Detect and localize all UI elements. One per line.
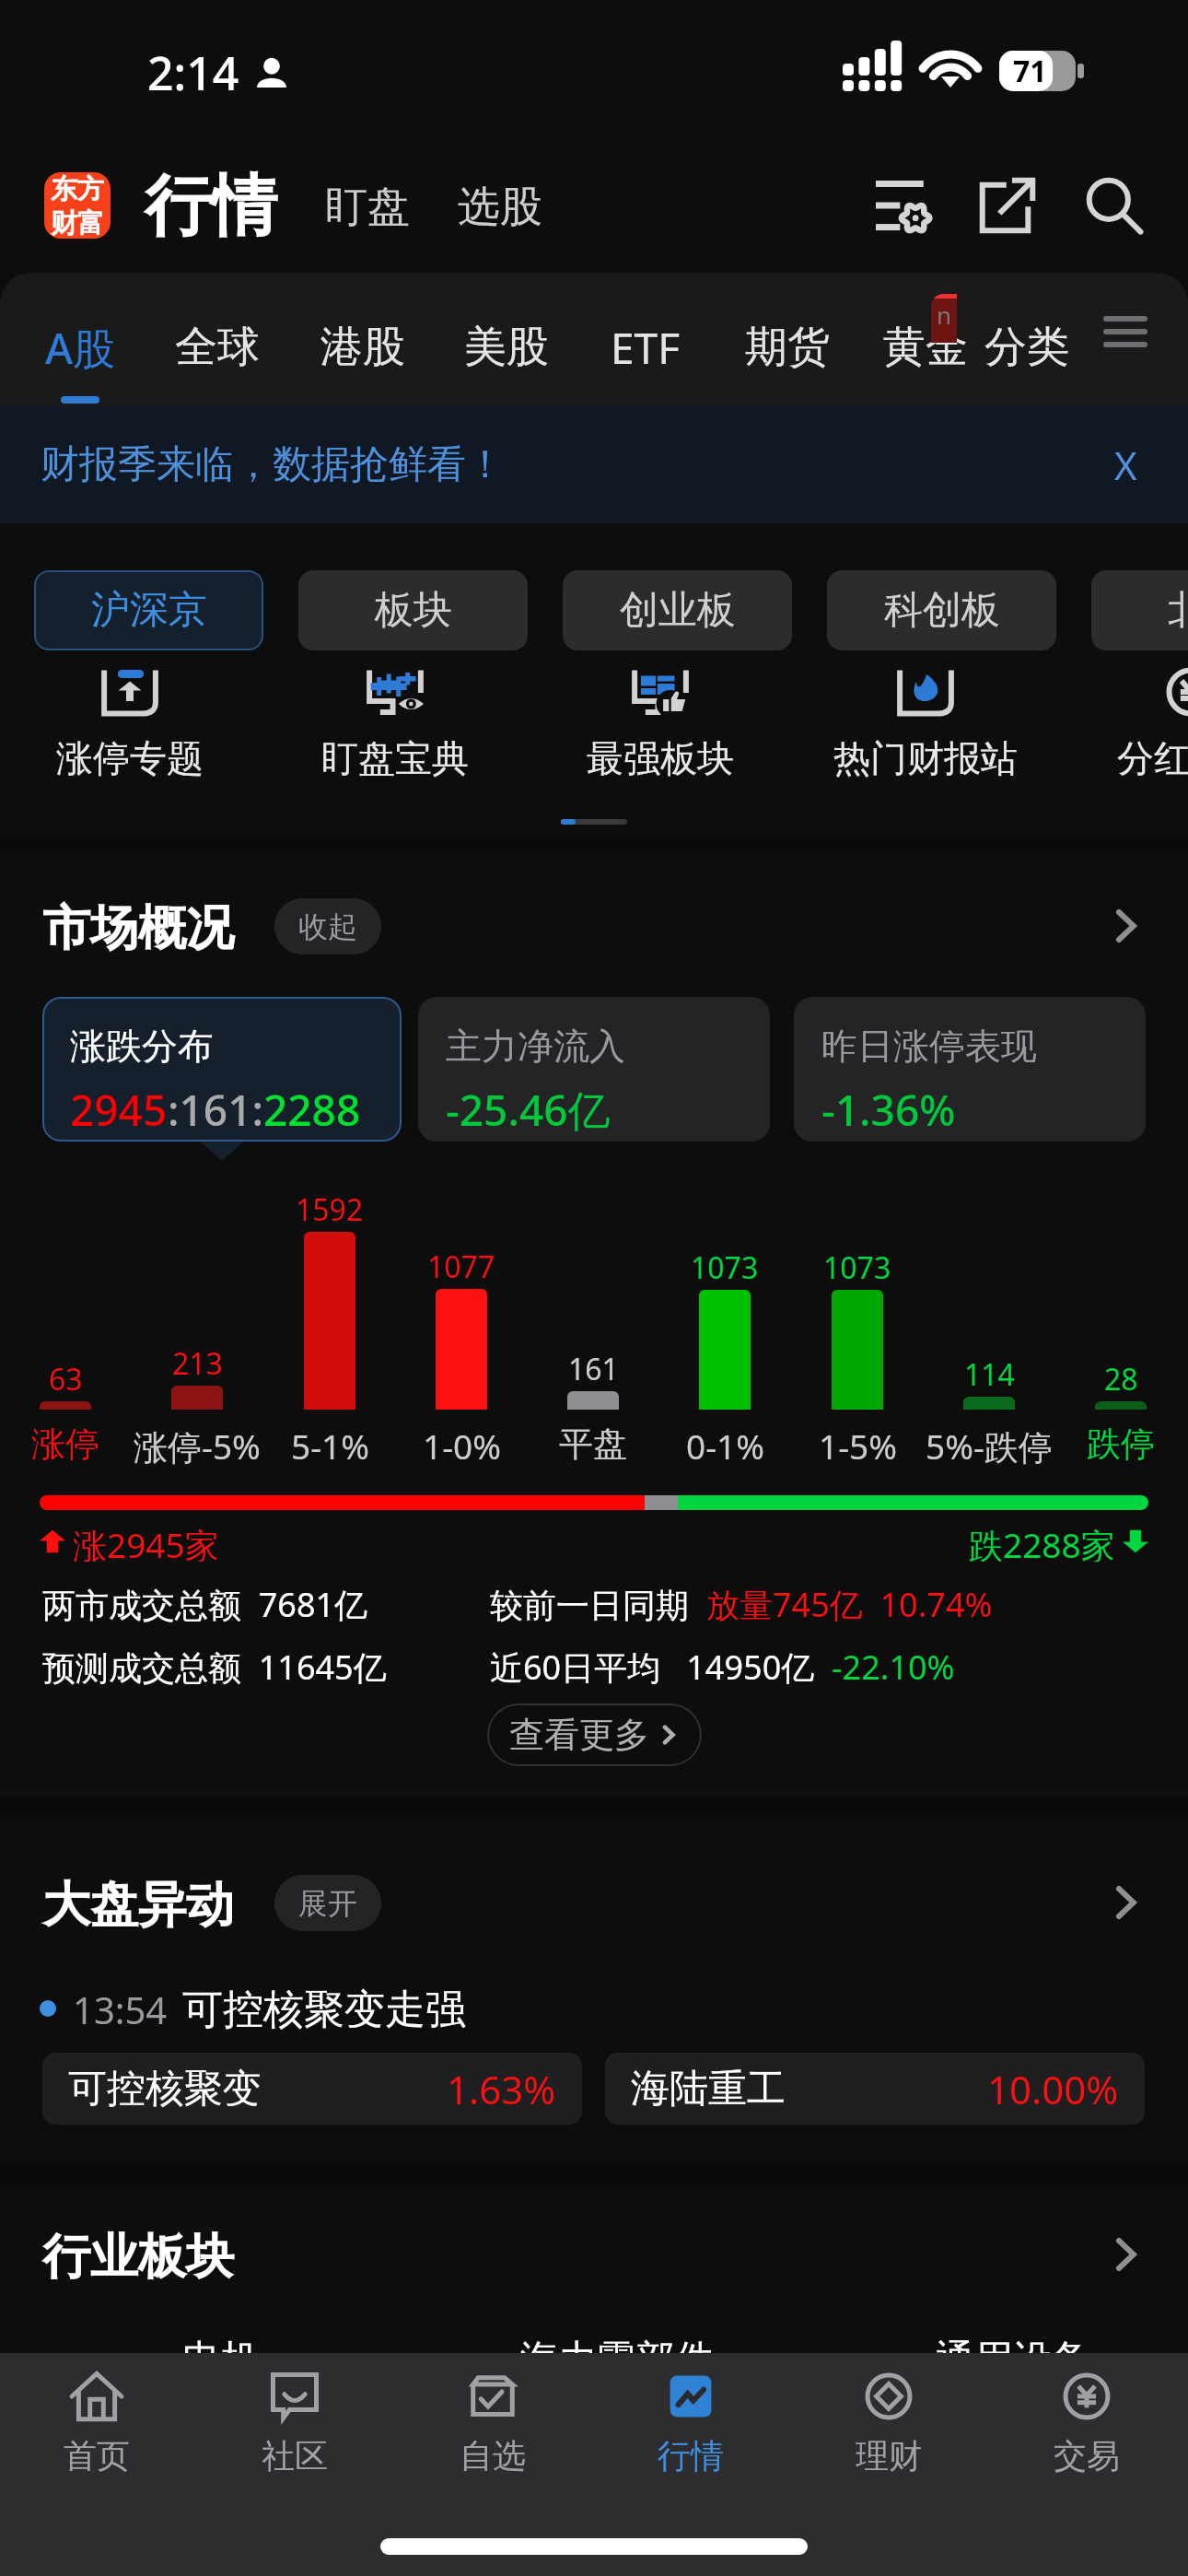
button[interactable]: 财报季来临，数据抢鲜看！ (0, 405, 1188, 523)
staticText: 通用设备 (936, 2336, 1090, 2384)
button[interactable]: 市场概况 (42, 872, 1146, 980)
staticText: 分类 (984, 321, 1069, 374)
staticText: 理财 (856, 2435, 922, 2476)
staticText: 近60日平均 14950亿 (490, 1645, 832, 1690)
staticText: 行业板块 (42, 2227, 234, 2288)
staticText: 黄金 (883, 321, 968, 374)
staticText: 1073 (823, 1247, 891, 1288)
staticText: 放量745亿 10.74% (706, 1582, 993, 1627)
button[interactable]: 盯盘 (325, 181, 410, 234)
staticText: 2945 (70, 1081, 168, 1139)
button[interactable]: 盯盘宝典 (262, 656, 528, 803)
staticText: A股 (45, 319, 116, 377)
button[interactable]: 昨日涨停表现 (794, 997, 1146, 1142)
staticText: 213 (172, 1343, 223, 1384)
staticText: 71 (1013, 51, 1047, 91)
staticText: 跌停 (1087, 1423, 1155, 1466)
button[interactable]: ETF (577, 278, 714, 405)
staticText: 北证 (1168, 586, 1188, 635)
staticText: 自选 (460, 2435, 526, 2476)
staticText: 13:54 (73, 1985, 168, 2032)
staticText: 两市成交总额 7681亿 (42, 1582, 368, 1627)
button[interactable]: 可控核聚变 (68, 2053, 556, 2125)
staticText: 行情 (658, 2435, 724, 2476)
button[interactable]: 涨跌分布 (42, 997, 402, 1142)
staticText: 财富 (51, 206, 104, 239)
button[interactable]: More tabs (1096, 278, 1155, 400)
staticText: 首页 (64, 2435, 130, 2476)
staticText: 161 (568, 1349, 619, 1389)
staticText: 114 (964, 1354, 1015, 1395)
staticText: 创业板 (620, 586, 736, 635)
button[interactable]: 交易 (988, 2353, 1185, 2500)
staticText: 涨2945家 (73, 1521, 219, 1562)
staticText: 1.63% (447, 2063, 556, 2115)
staticText: 1-5% (819, 1423, 897, 1469)
staticText: 电机 (182, 2336, 260, 2384)
button[interactable]: 分类 (959, 278, 1095, 405)
button[interactable]: 期货 (719, 278, 856, 405)
staticText: 财报季来临，数据抢鲜看！ (41, 440, 505, 489)
button[interactable]: Search (1079, 170, 1149, 240)
button[interactable]: 行业板块 (42, 2200, 1146, 2309)
button[interactable]: 查看更多 (487, 1704, 702, 1766)
staticText: 市场概况 (42, 898, 234, 959)
staticText: 5-1% (291, 1423, 369, 1469)
button[interactable]: 行情 (592, 2353, 789, 2500)
button[interactable]: 分红送配 (1058, 656, 1188, 803)
staticText: X (1114, 439, 1137, 491)
staticText: 交易 (1054, 2435, 1120, 2476)
button[interactable]: 最强板块 (528, 656, 793, 803)
staticText: 涨停-5% (134, 1423, 261, 1469)
staticText: 展开 (298, 1885, 357, 1922)
button[interactable]: 选股 (458, 181, 542, 234)
staticText: 1077 (427, 1247, 495, 1287)
staticText: 科创板 (884, 586, 1000, 635)
staticText: 5%-跌停 (926, 1423, 1053, 1469)
button[interactable]: 美股 (438, 278, 575, 405)
staticText: 热门财报站 (833, 735, 1018, 781)
staticText: 分红送配 (1117, 735, 1188, 781)
staticText: 板块 (375, 586, 452, 635)
staticText: 跌2288家 (969, 1521, 1115, 1562)
button[interactable]: 大盘异动 (42, 1848, 1146, 1957)
staticText: 1073 (691, 1247, 759, 1288)
staticText: 大盘异动 (42, 1875, 234, 1936)
button[interactable]: 全球 (149, 278, 285, 405)
button[interactable]: A股 (12, 278, 148, 405)
button[interactable]: Share (973, 170, 1042, 240)
button[interactable]: 黄金 (857, 278, 994, 405)
button[interactable]: Settings (866, 170, 936, 240)
staticText: 主力净流入 (446, 1024, 625, 1069)
button[interactable]: 首页 (0, 2353, 195, 2500)
button[interactable]: 创业板 (563, 570, 792, 650)
staticText: 东方 (51, 172, 104, 206)
button[interactable]: 热门财报站 (793, 656, 1058, 803)
staticText: 较前一日同期 (490, 1582, 706, 1627)
staticText: 昨日涨停表现 (821, 1024, 1037, 1069)
staticText: 1-0% (423, 1423, 501, 1469)
button[interactable]: 港股 (295, 278, 431, 405)
staticText: 美股 (464, 321, 549, 374)
button[interactable]: 理财 (790, 2353, 987, 2500)
staticText: 盯盘宝典 (321, 735, 469, 781)
button[interactable]: 海陆重工 (631, 2053, 1119, 2125)
button[interactable]: 社区 (196, 2353, 393, 2500)
staticText: 全球 (175, 321, 260, 374)
staticText: 查看更多 (509, 1713, 649, 1757)
staticText: :161: (168, 1081, 263, 1139)
staticText: 可控核聚变 (68, 2065, 262, 2113)
button[interactable]: 板块 (298, 570, 528, 650)
button[interactable]: 主力净流入 (418, 997, 770, 1142)
staticText: 涨停专题 (56, 735, 204, 781)
button[interactable]: 北证 (1091, 570, 1188, 650)
staticText: 平盘 (559, 1423, 627, 1466)
staticText: 涨停 (31, 1423, 99, 1466)
button[interactable]: 涨停专题 (0, 656, 262, 803)
button[interactable]: Close banner (1096, 435, 1155, 494)
button[interactable]: 科创板 (827, 570, 1056, 650)
button[interactable]: 沪深京 (34, 570, 263, 650)
button[interactable]: 自选 (394, 2353, 591, 2500)
staticText: 最强板块 (587, 735, 734, 781)
staticText: ETF (611, 319, 681, 377)
